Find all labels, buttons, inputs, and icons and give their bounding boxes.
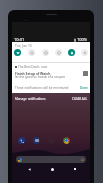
other: Google — [18, 158, 22, 162]
staticText: These notifications will be minimized — [15, 86, 69, 90]
staticText: The Best Deals — [18, 65, 40, 69]
button[interactable]: More — [81, 49, 88, 56]
button[interactable]: Do not disturb — [42, 49, 49, 56]
button[interactable]: Recents — [72, 166, 78, 172]
button[interactable]: Auto rotate — [68, 49, 75, 56]
other: Voice search — [81, 158, 84, 161]
staticText: Tue, Jan 10 — [15, 43, 32, 47]
staticText: Finish Setup of Watch — [15, 71, 51, 75]
button[interactable]: Back — [26, 166, 32, 172]
staticText: CLEAR ALL — [72, 97, 87, 101]
staticText: Manage notifications — [15, 97, 46, 101]
staticText: let the good vs. hands of a coupon — [15, 75, 66, 79]
button[interactable]: Google — [16, 156, 86, 163]
button[interactable]: Bluetooth — [28, 49, 35, 56]
button[interactable]: Home — [49, 166, 55, 172]
button[interactable]: Done — [80, 86, 88, 90]
button[interactable]: Chrome — [63, 137, 70, 144]
button[interactable]: The Best Deals — [12, 65, 90, 79]
button[interactable]: Flashlight — [55, 49, 62, 56]
staticText: now — [41, 65, 48, 69]
staticText: 10:01 — [14, 37, 25, 42]
button[interactable]: Wi-Fi — [14, 49, 21, 56]
button[interactable]: Messages — [33, 137, 40, 144]
staticText: Done — [80, 86, 88, 90]
button[interactable]: Phone — [18, 137, 25, 144]
staticText: 100% — [77, 37, 88, 42]
button[interactable]: Manage notifications — [15, 97, 46, 101]
button[interactable]: CLEAR ALL — [72, 97, 87, 101]
